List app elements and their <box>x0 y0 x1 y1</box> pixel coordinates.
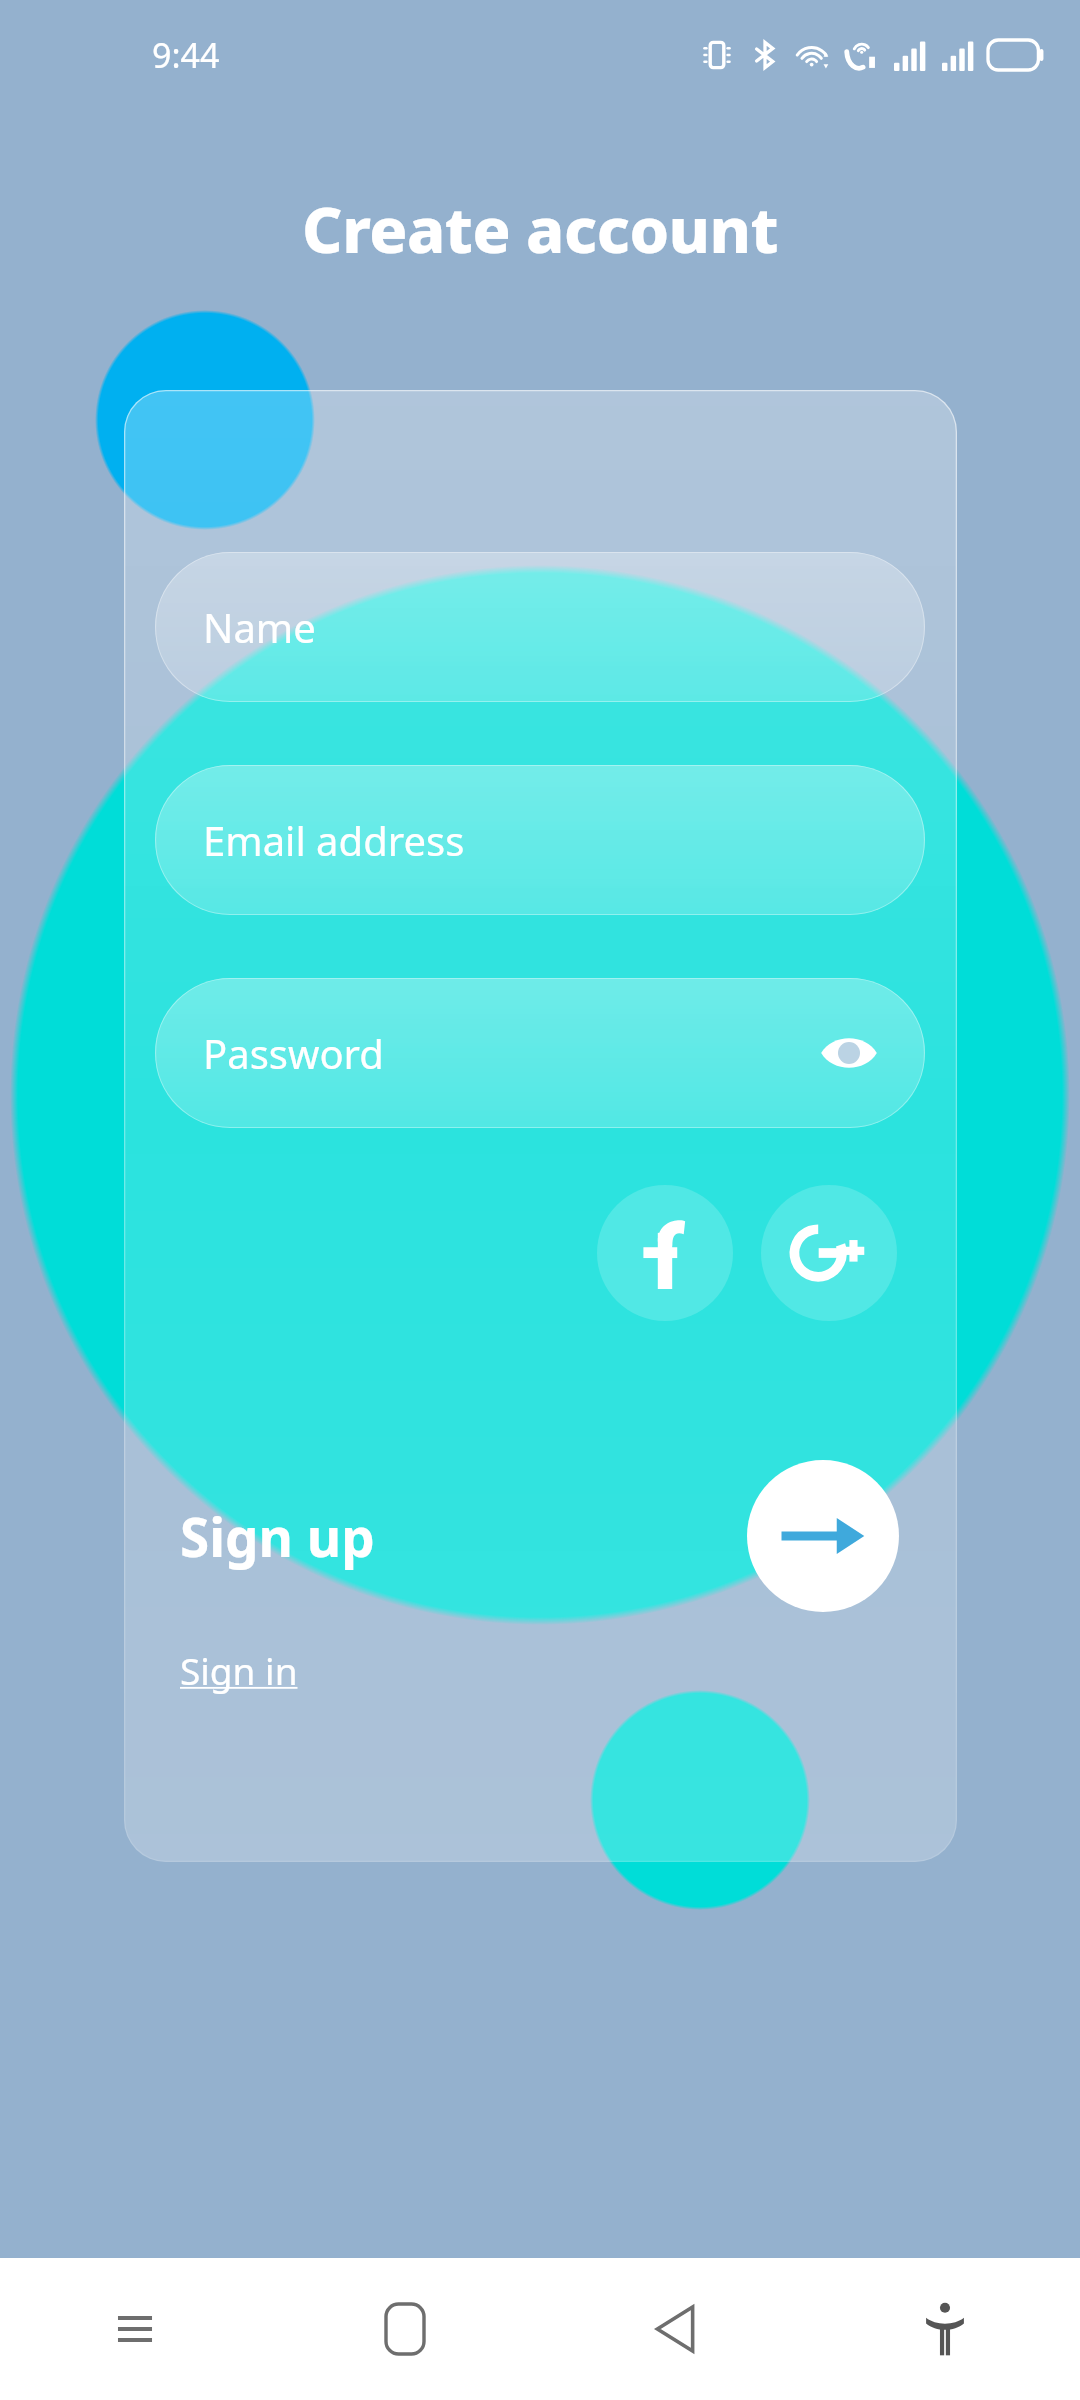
button[interactable]: Name <box>155 552 925 702</box>
button[interactable]: Sign up with Facebook <box>597 1185 733 1321</box>
staticText: Email address <box>203 813 465 867</box>
button[interactable]: Password <box>155 978 925 1128</box>
staticText: Sign in <box>180 1645 298 1695</box>
button[interactable]: Show password <box>813 1017 885 1089</box>
button[interactable]: Back <box>540 2258 810 2400</box>
button[interactable]: Accessibility <box>810 2258 1080 2400</box>
staticText: Password <box>203 1026 384 1080</box>
button[interactable]: Email address <box>155 765 925 915</box>
button[interactable]: Sign in <box>180 1645 298 1695</box>
button[interactable]: Continue <box>747 1460 899 1612</box>
staticText: 9:44 <box>152 32 220 78</box>
staticText: Create account <box>302 186 779 272</box>
button[interactable]: Menu <box>0 2258 270 2400</box>
button[interactable]: Home <box>270 2258 540 2400</box>
button[interactable]: Sign up <box>180 1500 375 1572</box>
staticText: Name <box>203 600 316 654</box>
button[interactable]: Sign up with Google Plus <box>761 1185 897 1321</box>
